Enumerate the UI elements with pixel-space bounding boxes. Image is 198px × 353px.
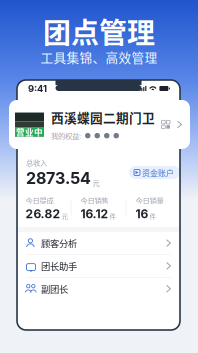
- staticText: 西溪蝶园二期门卫: [51, 108, 155, 126]
- staticText: 16.12: [80, 207, 108, 221]
- staticText: 总收入: [26, 157, 47, 168]
- staticText: 副团长: [41, 282, 68, 295]
- staticText: 营业中: [16, 125, 43, 138]
- staticText: 团点管理: [43, 11, 155, 51]
- staticText: 工具集锦、高效管理: [40, 48, 157, 66]
- staticText: 元: [92, 177, 99, 188]
- staticText: 件: [149, 211, 156, 221]
- staticText: 今日销量: [135, 195, 163, 206]
- staticText: 我的权益:: [51, 130, 81, 141]
- button[interactable]: 顾客分析: [17, 232, 180, 254]
- staticText: 元: [61, 211, 68, 221]
- button[interactable]: 副团长: [17, 278, 180, 300]
- staticText: 16: [135, 207, 148, 221]
- staticText: 2873.54: [26, 169, 91, 188]
- staticText: 资金账户: [142, 167, 174, 178]
- staticText: 件: [109, 211, 116, 221]
- button[interactable]: 团长助手: [17, 255, 180, 277]
- button[interactable]: 资金账户: [129, 166, 180, 179]
- staticText: 26.82: [25, 207, 60, 221]
- staticText: 团长助手: [41, 259, 77, 273]
- staticText: 今日销售: [80, 195, 108, 206]
- staticText: 今日提成: [25, 195, 53, 206]
- button[interactable]: 营业中: [9, 100, 190, 149]
- staticText: 顾客分析: [41, 236, 77, 250]
- staticText: 9:41: [28, 83, 47, 94]
